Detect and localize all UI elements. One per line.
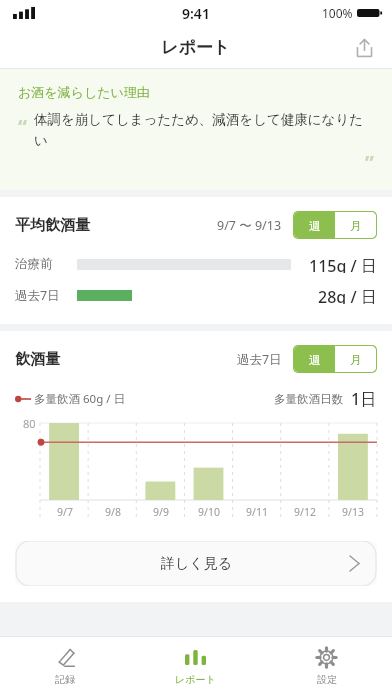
staticText: 9/9 (153, 505, 169, 519)
staticText: お酒を減らしたい理由 (18, 84, 150, 100)
staticText: 週 (309, 218, 321, 233)
button[interactable]: 週 (294, 212, 335, 238)
button[interactable]: 週 (294, 346, 335, 372)
button[interactable]: Share (344, 27, 384, 67)
button[interactable]: レポート (130, 637, 261, 696)
staticText: 9/13 (342, 505, 364, 519)
staticText: 詳しく見る (161, 555, 232, 573)
staticText: 28g / 日 (318, 286, 377, 304)
staticText: 記録 (55, 673, 75, 686)
staticText: 飲酒量 (15, 350, 60, 369)
staticText: “ (18, 113, 27, 140)
staticText: 月 (350, 352, 362, 367)
staticText: 治療前 (15, 256, 53, 272)
staticText: レポート (161, 37, 231, 58)
staticText: 80 (23, 416, 36, 431)
staticText: 平均飲酒量 (15, 216, 90, 235)
staticText: 1日 (351, 388, 377, 410)
staticText: 多量飲酒 60g / 日 (34, 391, 125, 407)
staticText: 設定 (317, 673, 337, 686)
staticText: 月 (350, 218, 362, 233)
staticText: 9/10 (198, 505, 220, 519)
staticText: 体調を崩してしまったため、減酒をして健康になりたい (34, 111, 374, 149)
staticText: 9/11 (246, 505, 268, 519)
button[interactable]: 月 (335, 212, 376, 238)
button[interactable]: 設定 (261, 637, 392, 696)
button[interactable]: 月 (335, 346, 376, 372)
staticText: 9/8 (105, 505, 121, 519)
staticText: 9/7 〜 9/13 (217, 217, 282, 234)
staticText: 過去7日 (15, 287, 60, 304)
staticText: 過去7日 (237, 351, 282, 368)
button[interactable]: 詳しく見る (15, 541, 377, 586)
staticText: 100% (322, 5, 353, 21)
staticText: 9:41 (182, 4, 210, 23)
button[interactable]: 記録 (0, 637, 130, 696)
staticText: 多量飲酒日数 (274, 392, 343, 406)
staticText: 9/7 (57, 505, 73, 519)
staticText: ” (365, 149, 374, 176)
staticText: 9/12 (294, 505, 316, 519)
staticText: 115g / 日 (309, 255, 377, 273)
staticText: 週 (309, 352, 321, 367)
staticText: レポート (175, 673, 216, 686)
